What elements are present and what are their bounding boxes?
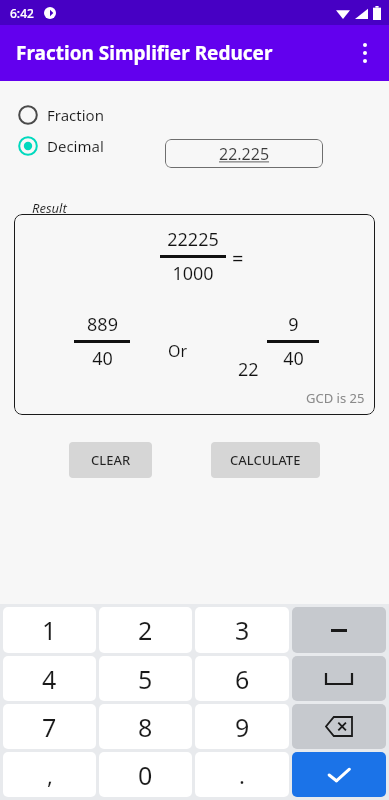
- staticText: 22: [238, 357, 259, 382]
- button[interactable]: ,: [3, 752, 96, 797]
- staticText: 40: [283, 346, 304, 371]
- staticText: CALCULATE: [230, 451, 301, 469]
- staticText: GCD is 25: [306, 389, 365, 407]
- staticText: CLEAR: [91, 451, 131, 469]
- staticText: 5: [138, 662, 153, 696]
- staticText: 3: [235, 613, 250, 647]
- staticText: 4: [42, 662, 57, 696]
- staticText: .: [239, 760, 245, 790]
- staticText: 22.225: [219, 143, 270, 165]
- button[interactable]: 4: [3, 656, 96, 701]
- staticText: Decimal: [47, 136, 104, 156]
- staticText: 22225: [167, 227, 219, 252]
- staticText: 2: [138, 613, 153, 647]
- button[interactable]: 9: [195, 704, 289, 749]
- staticText: 0: [138, 758, 153, 792]
- button[interactable]: CLEAR: [69, 442, 152, 478]
- button[interactable]: 8: [99, 704, 192, 749]
- button[interactable]: Space: [292, 656, 386, 701]
- staticText: 9: [288, 312, 299, 337]
- button[interactable]: CALCULATE: [211, 442, 320, 478]
- button[interactable]: Fraction: [14, 103, 108, 127]
- button[interactable]: 7: [3, 704, 96, 749]
- staticText: 9: [235, 710, 250, 744]
- button[interactable]: .: [195, 752, 289, 797]
- staticText: ,: [47, 760, 53, 790]
- button[interactable]: Backspace: [292, 704, 386, 749]
- staticText: 889: [87, 312, 118, 337]
- button[interactable]: 1: [3, 607, 96, 653]
- button[interactable]: 22.225: [165, 139, 323, 168]
- staticText: 1: [42, 613, 57, 647]
- staticText: 6:42: [10, 5, 34, 21]
- button[interactable]: Minus: [292, 607, 386, 653]
- button[interactable]: 6: [195, 656, 289, 701]
- staticText: 40: [92, 346, 113, 371]
- staticText: 7: [42, 710, 57, 744]
- staticText: Result: [32, 199, 67, 217]
- staticText: =: [232, 245, 244, 272]
- staticText: 1000: [172, 261, 214, 286]
- button[interactable]: 3: [195, 607, 289, 653]
- staticText: Fraction: [47, 105, 104, 125]
- button[interactable]: 0: [99, 752, 192, 797]
- staticText: 6: [235, 662, 250, 696]
- button[interactable]: More options: [341, 25, 389, 81]
- button[interactable]: Enter: [292, 752, 386, 797]
- button[interactable]: 5: [99, 656, 192, 701]
- button[interactable]: Decimal: [14, 134, 108, 158]
- staticText: 8: [138, 710, 153, 744]
- staticText: Or: [168, 340, 188, 362]
- button[interactable]: 2: [99, 607, 192, 653]
- staticText: Fraction Simplifier Reducer: [16, 40, 273, 66]
